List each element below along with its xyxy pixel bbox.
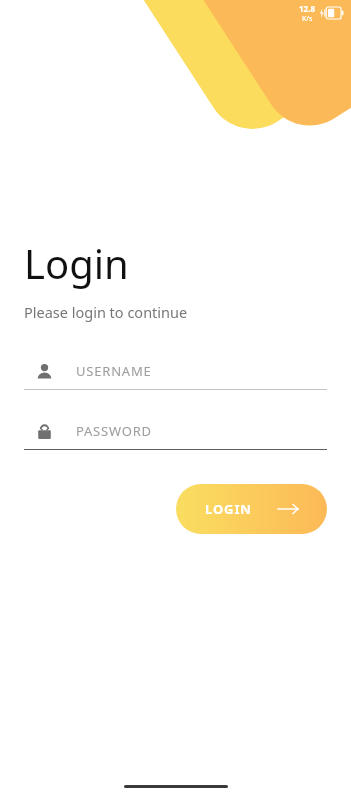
staticText: PASSWORD bbox=[76, 422, 152, 440]
other: Login bbox=[278, 503, 298, 515]
button[interactable]: USERNAME bbox=[24, 356, 327, 390]
button[interactable]: LOGIN bbox=[176, 484, 327, 534]
staticText: 12.8 bbox=[299, 3, 315, 14]
staticText: Login bbox=[24, 236, 129, 290]
staticText: Please login to continue bbox=[24, 302, 188, 322]
staticText: K/s bbox=[302, 14, 313, 24]
button[interactable]: PASSWORD bbox=[24, 416, 327, 450]
staticText: LOGIN bbox=[205, 500, 252, 518]
staticText: USERNAME bbox=[76, 362, 152, 380]
